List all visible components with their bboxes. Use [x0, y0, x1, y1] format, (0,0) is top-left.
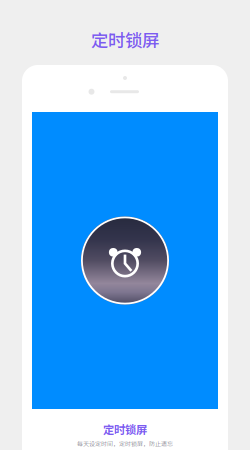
- staticText: 每天设定时间，定时锁屏，防止遗忘: [77, 439, 173, 448]
- staticText: 定时锁屏: [103, 421, 147, 437]
- staticText: 定时锁屏: [91, 27, 159, 52]
